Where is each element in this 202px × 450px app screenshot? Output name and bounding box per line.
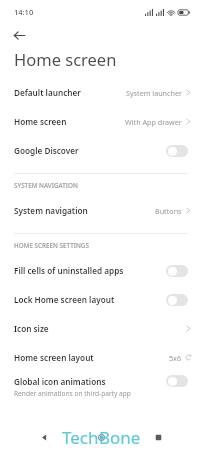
button[interactable]: Default launcher [0,78,202,107]
staticText: Tech [62,426,99,449]
button[interactable]: Back [31,424,57,450]
button[interactable]: Recents [145,424,171,450]
staticText: SYSTEM NAVIGATION [14,181,78,190]
button[interactable]: Google Discover [0,136,202,165]
button[interactable]: Home screen layout [0,343,202,372]
staticText: Icon size [14,323,182,334]
staticText: 5x6 [169,353,182,363]
staticText: System navigation [14,205,155,216]
staticText: Default launcher [14,87,126,98]
staticText: With App drawer [125,117,182,127]
button[interactable]: Global icon animations [0,372,202,402]
button[interactable]: Home screen [0,107,202,136]
button[interactable]: System navigation [0,196,202,225]
staticText: Home screen [14,48,117,70]
staticText: 14:10 [14,7,34,17]
button[interactable]: Home [88,424,114,450]
staticText: Home screen [14,116,125,127]
staticText: Global icon animations [14,376,166,387]
button[interactable]: Back [9,25,29,45]
button[interactable]: Lock Home screen layout [0,285,202,314]
staticText: Google Discover [14,145,166,156]
staticText: Buttons [155,206,182,216]
staticText: Fill cells of uninstalled apps [14,265,166,276]
staticText: Home screen layout [14,352,169,363]
staticText: Bone [99,426,141,449]
button[interactable]: Icon size [0,314,202,343]
button[interactable]: Fill cells of uninstalled apps [0,256,202,285]
staticText: Lock Home screen layout [14,294,166,305]
staticText: System launcher [126,88,182,98]
staticText: Render animations on third-party app [14,389,131,398]
staticText: HOME SCREEN SETTINGS [14,241,89,250]
